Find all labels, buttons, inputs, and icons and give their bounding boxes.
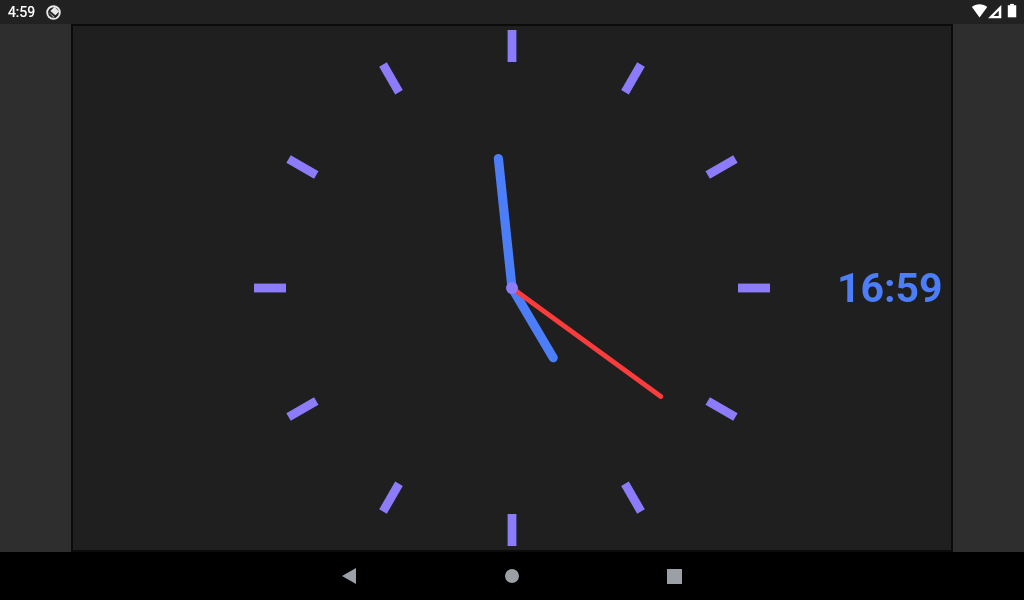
staticText: 16:59 [837,264,943,312]
button[interactable]: Analog clock, 16:59 [73,26,951,550]
button[interactable]: Recent apps [650,552,698,600]
button[interactable]: Back [325,552,373,600]
staticText: 4:59 [8,4,35,20]
button[interactable]: Home [488,552,536,600]
other: Auto rotate locked [46,5,61,20]
